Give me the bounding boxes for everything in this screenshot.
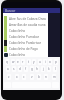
button[interactable]: Caboclinho (3, 28, 48, 34)
button[interactable]: Abre Sus de Cabeza Onza (3, 16, 48, 22)
button[interactable]: p (54, 59, 58, 65)
button[interactable]: i (43, 59, 47, 65)
button[interactable]: f (24, 66, 28, 72)
button[interactable]: c (22, 74, 26, 80)
staticText: a (7, 67, 9, 71)
button[interactable]: l (53, 66, 57, 72)
staticText: z (8, 75, 10, 79)
staticText: b (38, 75, 40, 79)
button[interactable]: d (18, 66, 22, 72)
staticText: g (31, 67, 33, 71)
button[interactable]: x (15, 74, 19, 80)
staticText: i (45, 60, 46, 64)
button[interactable]: k (47, 66, 51, 72)
button[interactable]: e (16, 59, 20, 65)
staticText: Caboclinho (9, 29, 26, 33)
button[interactable]: o (48, 59, 52, 65)
staticText: Abre Sus de Cabeza Onza (9, 17, 46, 21)
staticText: h (36, 67, 38, 71)
button[interactable]: m (52, 74, 56, 80)
staticText: e (17, 60, 19, 64)
button[interactable]: v (30, 74, 34, 80)
staticText: d (19, 67, 21, 71)
staticText: n (45, 75, 47, 79)
button[interactable]: g (30, 66, 34, 72)
staticText: m (53, 75, 56, 79)
staticText: w (12, 60, 15, 64)
staticText: l (55, 67, 56, 71)
button[interactable]: z (7, 74, 11, 80)
staticText: r (22, 60, 24, 64)
button[interactable]: u (38, 59, 42, 65)
button[interactable]: a (6, 66, 10, 72)
staticText: Caboclinho de Pago Oscuro (9, 47, 48, 51)
staticText: c (23, 75, 25, 79)
staticText: o (49, 60, 51, 64)
button[interactable]: Amarillas de caudia nuna (3, 22, 48, 28)
button[interactable]: Buscar (3, 8, 60, 13)
staticText: Amarillas de caudia nuna (9, 23, 46, 27)
staticText: x (16, 75, 18, 79)
button[interactable]: h (35, 66, 39, 72)
button[interactable]: s (12, 66, 16, 72)
button[interactable]: Caboclinho de Pago Oscuro (3, 46, 48, 52)
staticText: y (33, 60, 35, 64)
staticText: t (28, 60, 30, 64)
button[interactable]: b (37, 74, 41, 80)
staticText: s (13, 67, 15, 71)
staticText: Buscar (5, 9, 16, 13)
staticText: k (48, 67, 50, 71)
button[interactable]: r (21, 59, 25, 65)
staticText: Caboclinho Purrabar (9, 35, 39, 39)
button[interactable]: Caboclinho Parabrisar (3, 40, 48, 46)
staticText: u (39, 60, 41, 64)
staticText: j (43, 67, 44, 71)
button[interactable]: Caboclinho Purrabar (3, 34, 48, 40)
staticText: Caboclinho (9, 53, 26, 57)
button[interactable]: w (11, 59, 15, 65)
button[interactable]: q (5, 59, 9, 65)
button[interactable]: t (27, 59, 31, 65)
staticText: p (55, 60, 57, 64)
button[interactable]: n (44, 74, 48, 80)
staticText: Caboclinho Parabrisar (9, 41, 42, 45)
button[interactable]: Caboclinho (3, 52, 48, 57)
button[interactable]: j (41, 66, 45, 72)
staticText: v (31, 75, 33, 79)
button[interactable]: y (32, 59, 36, 65)
staticText: q (6, 60, 8, 64)
staticText: f (25, 67, 27, 71)
